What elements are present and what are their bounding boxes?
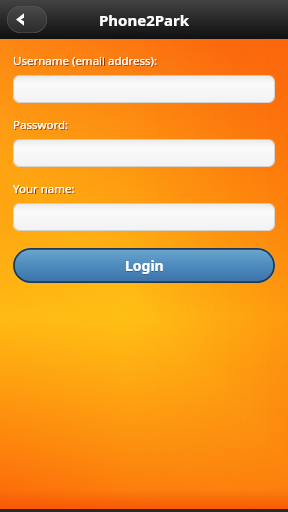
staticText: Username (email address): — [14, 54, 159, 70]
button[interactable] — [13, 139, 275, 167]
staticText: Username (email address): — [13, 53, 158, 69]
staticText: Phone2Park — [0, 10, 288, 30]
staticText: Your name: — [13, 181, 75, 197]
staticText: Login — [125, 256, 164, 275]
button[interactable]: Back — [7, 6, 47, 33]
staticText: Password: — [13, 117, 69, 133]
button[interactable] — [13, 75, 275, 103]
button[interactable]: Login — [13, 248, 275, 283]
staticText: Password: — [14, 118, 70, 134]
staticText: Login — [125, 257, 164, 276]
button[interactable] — [13, 203, 275, 231]
staticText: Your name: — [14, 182, 76, 198]
